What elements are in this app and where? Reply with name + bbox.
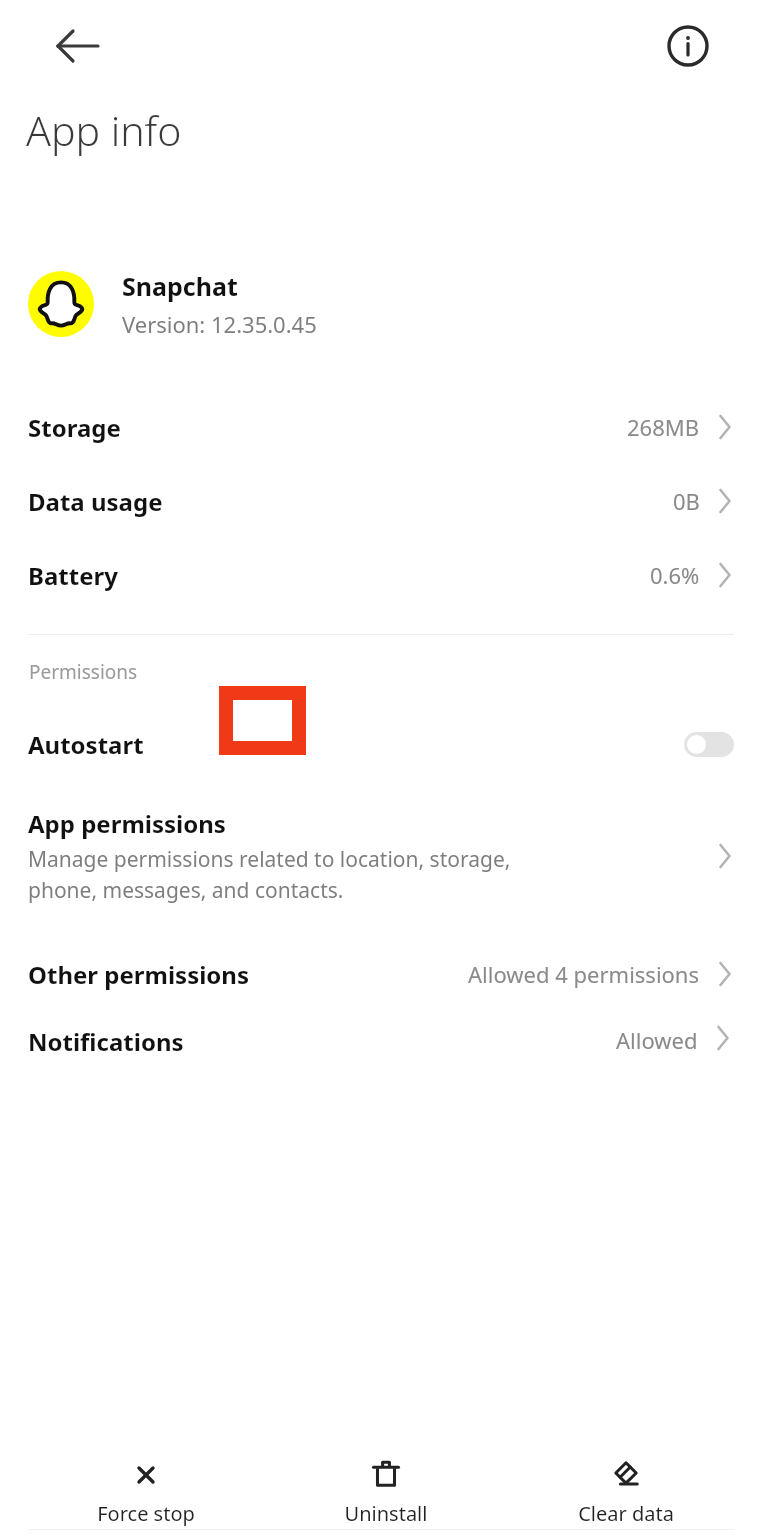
button[interactable]: Clear data (566, 1450, 686, 1527)
button[interactable]: App details info (660, 18, 716, 74)
staticText: phone, messages, and contacts. (28, 876, 344, 905)
staticText: 0.6% (650, 560, 700, 590)
staticText: Storage (28, 411, 121, 444)
staticText: Notifications (28, 1025, 184, 1051)
staticText: Autostart (28, 728, 144, 761)
button[interactable]: Notifications (0, 1025, 762, 1051)
staticText: App info (26, 102, 182, 158)
button[interactable]: Autostart (0, 707, 762, 781)
staticText: 0B (673, 486, 700, 516)
staticText: Uninstall (326, 1500, 446, 1527)
button[interactable]: Data usage (0, 464, 762, 538)
button[interactable]: Other permissions (0, 937, 762, 1011)
button[interactable]: App permissions (0, 803, 762, 909)
staticText: Version: 12.35.0.45 (122, 309, 317, 339)
staticText: Clear data (566, 1500, 686, 1527)
staticText: App permissions (28, 807, 226, 840)
button[interactable]: Battery (0, 538, 762, 612)
staticText: Permissions (29, 659, 138, 685)
staticText: Allowed (616, 1025, 698, 1051)
staticText: Manage permissions related to location, … (28, 845, 511, 874)
button[interactable]: Uninstall (326, 1450, 446, 1527)
staticText: Other permissions (28, 958, 250, 991)
button[interactable]: Storage (0, 390, 762, 464)
staticText: Battery (28, 559, 118, 592)
button[interactable]: Force stop (86, 1450, 206, 1527)
staticText: Allowed 4 permissions (468, 959, 700, 989)
staticText: Force stop (86, 1500, 206, 1527)
staticText: 268MB (627, 412, 700, 442)
staticText: Snapchat (122, 269, 238, 303)
button[interactable]: Back (50, 18, 106, 74)
staticText: Data usage (28, 485, 163, 518)
